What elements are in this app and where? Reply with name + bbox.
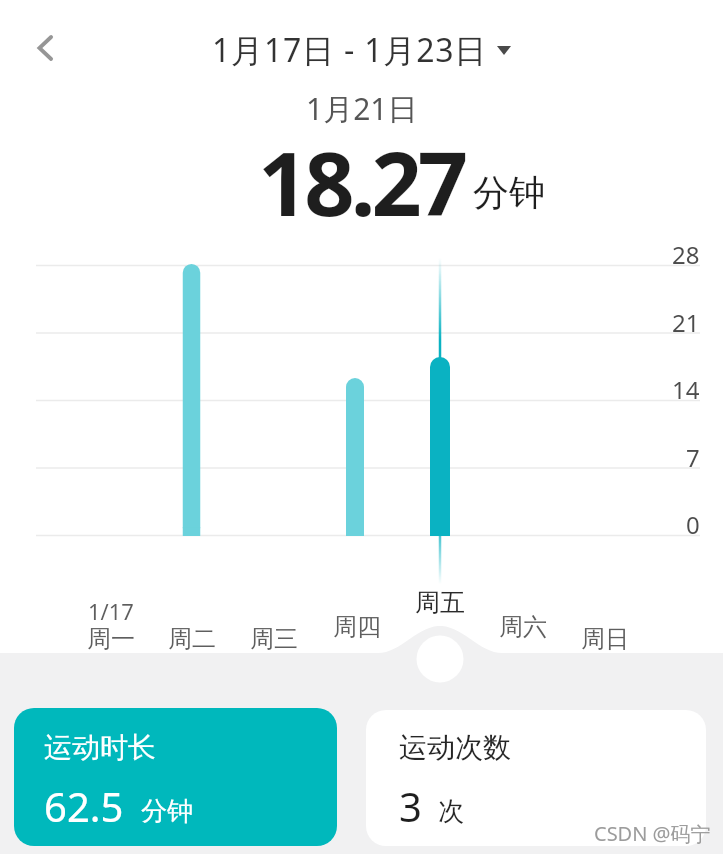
- staticText: 周六: [499, 612, 547, 642]
- staticText: 7: [686, 441, 700, 474]
- staticText: 周四: [333, 612, 381, 642]
- staticText: 1月17日 - 1月23日: [212, 28, 488, 72]
- staticText: 3: [399, 779, 422, 833]
- staticText: 1/17: [88, 596, 134, 626]
- button[interactable]: [30, 30, 66, 66]
- staticText: 分钟: [473, 170, 545, 215]
- staticText: 14: [672, 373, 700, 406]
- staticText: 1月21日: [306, 88, 418, 129]
- staticText: 周二: [168, 624, 216, 654]
- staticText: 18.27: [258, 122, 465, 242]
- button[interactable]: 运动时长: [14, 708, 337, 846]
- staticText: 周五: [415, 587, 465, 618]
- button[interactable]: 1月17日 - 1月23日: [212, 28, 511, 72]
- staticText: 运动时长: [44, 730, 156, 765]
- staticText: 周日: [581, 624, 629, 654]
- staticText: 28: [672, 238, 700, 271]
- staticText: 62.5: [44, 779, 124, 833]
- staticText: 周一: [87, 624, 135, 654]
- staticText: 周三: [250, 624, 298, 654]
- staticText: CSDN @码宁: [594, 820, 711, 847]
- button[interactable]: 运动次数: [366, 710, 706, 846]
- staticText: 分钟: [141, 795, 193, 828]
- staticText: 21: [672, 306, 700, 339]
- staticText: 次: [438, 795, 464, 828]
- staticText: 0: [686, 508, 700, 541]
- staticText: 运动次数: [399, 730, 511, 765]
